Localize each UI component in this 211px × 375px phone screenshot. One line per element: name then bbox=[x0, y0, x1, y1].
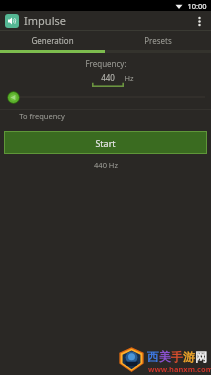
staticText: Presets bbox=[144, 35, 172, 46]
button[interactable]: Frequency slider bbox=[7, 91, 20, 104]
staticText: Generation bbox=[31, 35, 74, 46]
staticText: www.hanxm.com bbox=[148, 364, 211, 374]
staticText: 440 bbox=[101, 72, 115, 83]
button[interactable]: More options bbox=[191, 13, 207, 29]
staticText: 手 bbox=[171, 349, 183, 364]
staticText: 网 bbox=[195, 349, 207, 364]
staticText: Hz bbox=[124, 73, 134, 83]
staticText: Impulse bbox=[24, 13, 66, 28]
staticText: 440 Hz bbox=[94, 160, 118, 170]
staticText: Start bbox=[95, 137, 116, 149]
staticText: 美 bbox=[159, 349, 171, 364]
staticText: 游 bbox=[183, 349, 195, 364]
button[interactable]: Generation bbox=[0, 31, 105, 50]
staticText: 10:00 bbox=[187, 1, 207, 11]
staticText: 西 bbox=[147, 349, 159, 364]
button[interactable]: Presets bbox=[105, 31, 211, 50]
staticText: Frequency: bbox=[85, 58, 127, 69]
button[interactable]: Start bbox=[5, 132, 206, 153]
staticText: To frequency bbox=[19, 111, 65, 121]
